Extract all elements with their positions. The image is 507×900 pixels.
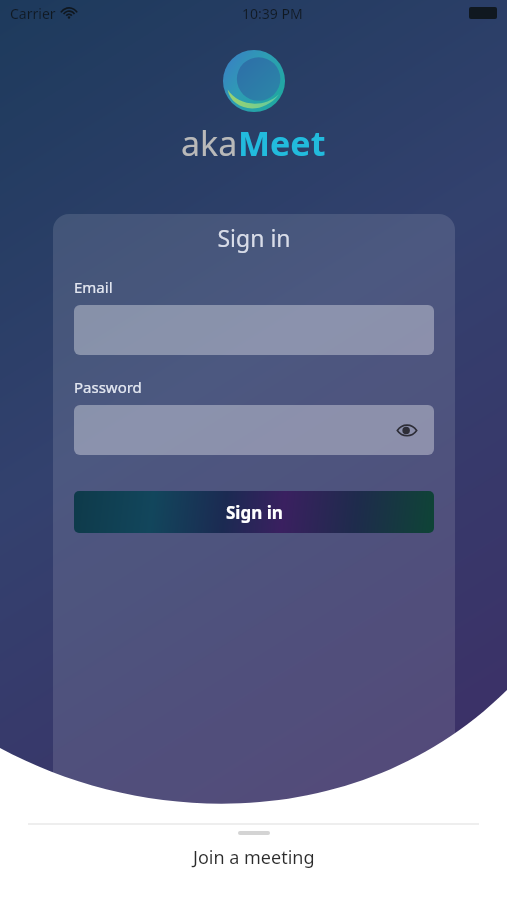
staticText: Meet	[238, 120, 326, 166]
staticText: Join a meeting	[193, 845, 315, 870]
staticText: aka	[181, 120, 238, 166]
staticText: Email	[74, 277, 113, 297]
button[interactable]: Show password	[74, 405, 434, 455]
staticText: Sign in	[226, 501, 283, 524]
staticText: Sign in	[53, 222, 455, 253]
staticText: 10:39 PM	[242, 4, 303, 23]
staticText: Password	[74, 377, 142, 397]
staticText: Carrier	[10, 4, 56, 23]
button[interactable]: Sign in	[74, 491, 434, 533]
button[interactable]: Join a meeting	[28, 824, 479, 900]
button[interactable]: Show password	[394, 417, 420, 443]
